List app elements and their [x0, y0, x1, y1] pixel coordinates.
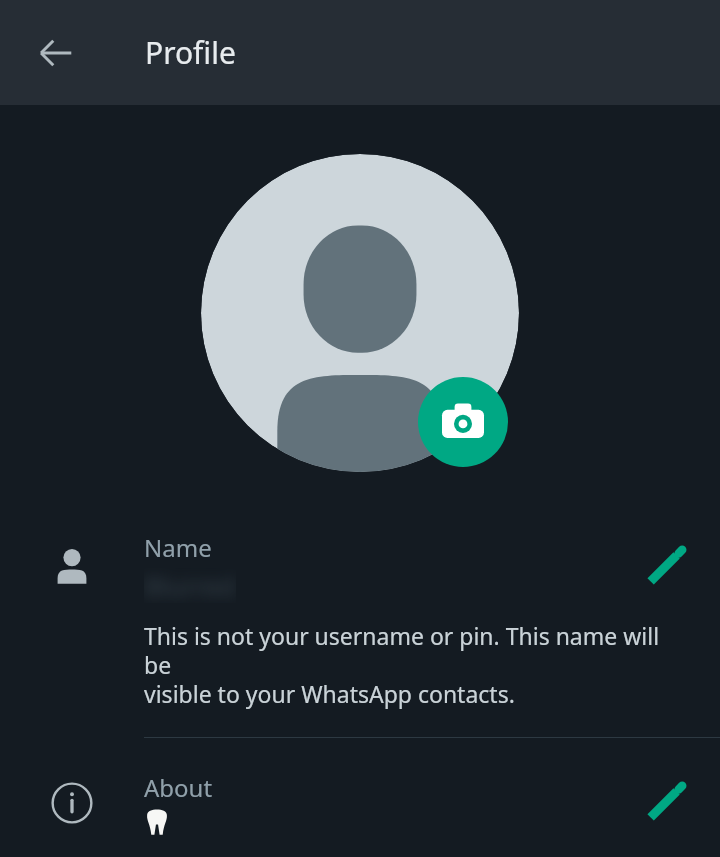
staticText: Profile: [145, 32, 236, 73]
button[interactable]: Edit name: [610, 531, 720, 603]
button[interactable]: About: [0, 765, 720, 841]
staticText: About: [144, 771, 213, 804]
staticText: Blurred: [144, 568, 236, 603]
staticText: This is not your username or pin. This n…: [144, 620, 680, 710]
button[interactable]: Profile photo: [201, 154, 519, 472]
staticText: Name: [144, 531, 212, 564]
button[interactable]: Edit about: [610, 765, 720, 841]
button[interactable]: Name: [0, 531, 720, 603]
button[interactable]: Back: [24, 21, 88, 85]
button[interactable]: Change profile photo: [418, 377, 508, 467]
